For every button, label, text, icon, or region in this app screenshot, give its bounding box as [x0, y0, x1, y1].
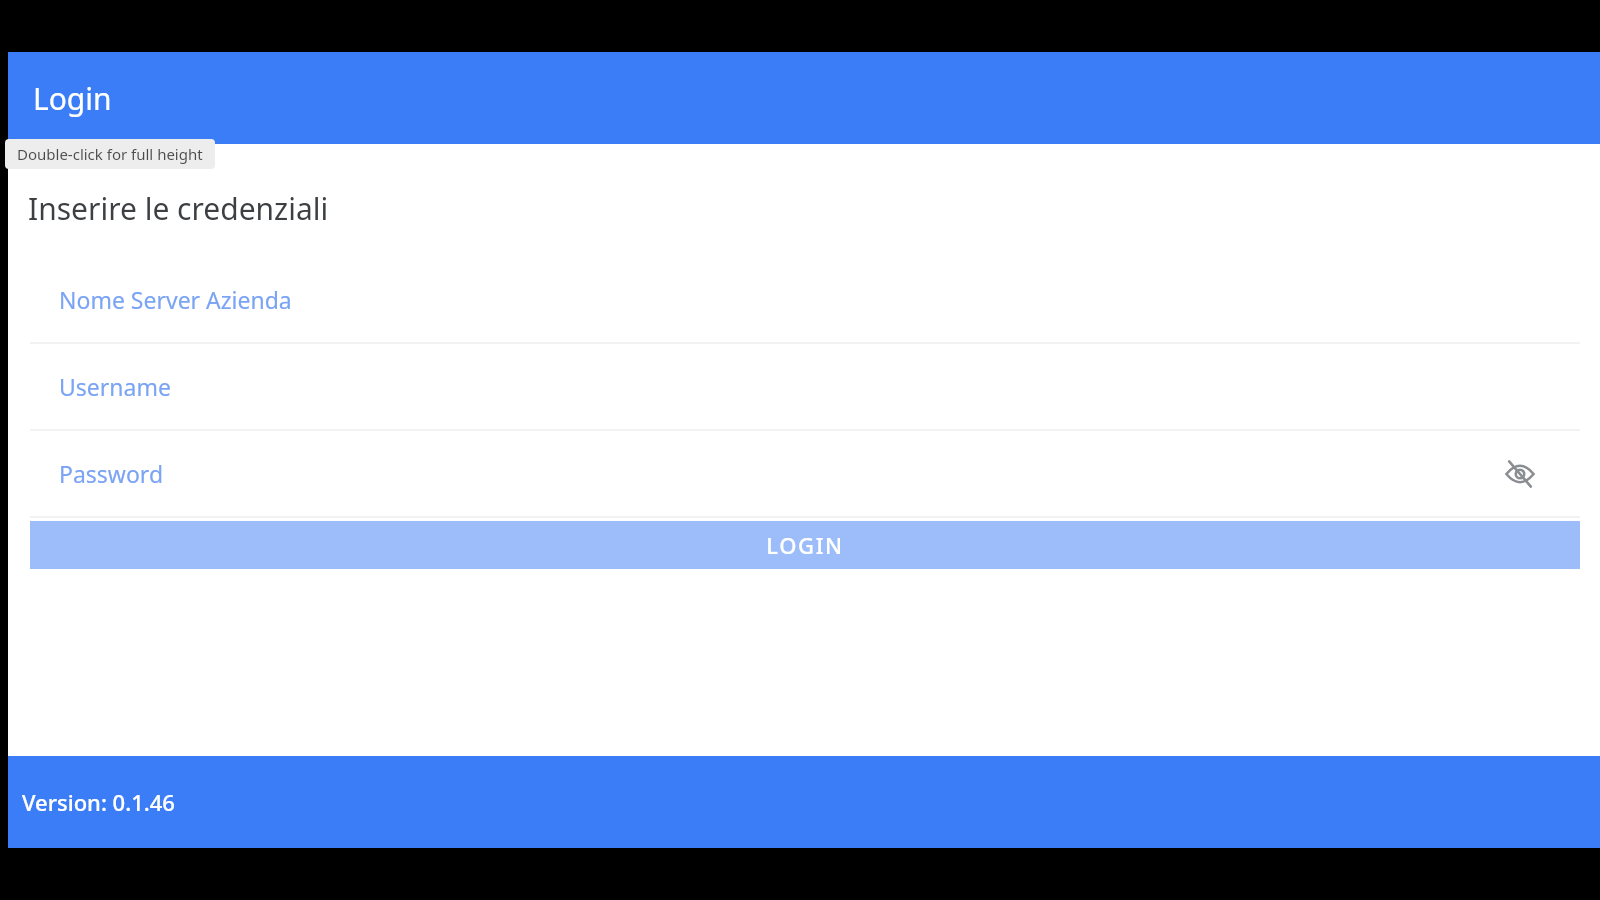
button[interactable]: LOGIN [30, 521, 1580, 569]
staticText: Double-click for full height [17, 144, 203, 164]
staticText: LOGIN [766, 530, 844, 560]
staticText: Username [59, 371, 171, 402]
staticText: Inserire le credenziali [28, 188, 329, 229]
staticText: Version: 0.1.46 [22, 787, 175, 817]
staticText: Password [59, 458, 164, 489]
button[interactable]: Nome Server Azienda [8, 257, 1600, 342]
staticText: Nome Server Azienda [59, 284, 292, 315]
button[interactable]: Show password [1498, 452, 1542, 496]
staticText: Login [33, 78, 112, 119]
button[interactable]: Username [8, 344, 1600, 429]
button[interactable]: Password [8, 431, 1600, 516]
